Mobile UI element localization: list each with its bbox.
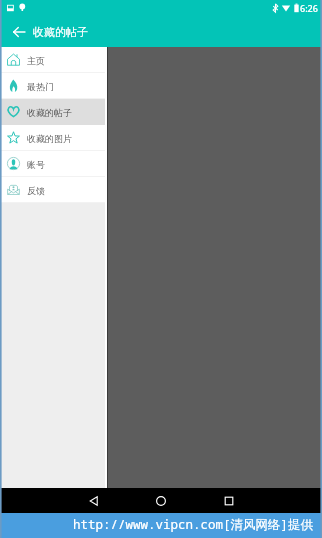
staticText: 最热门	[27, 81, 54, 92]
button[interactable]: 收藏的图片	[0, 125, 105, 150]
staticText: 6:26	[300, 2, 318, 14]
button[interactable]: Back	[81, 488, 106, 513]
button[interactable]: 最热门	[0, 73, 105, 98]
staticText: 反馈	[27, 185, 45, 196]
button[interactable]: 账号	[0, 151, 105, 176]
button[interactable]: 主页	[0, 47, 105, 72]
staticText: 收藏的帖子	[33, 25, 88, 39]
button[interactable]: Home	[148, 488, 173, 513]
button[interactable]: Recents	[216, 488, 241, 513]
staticText: 收藏的图片	[27, 133, 72, 144]
button[interactable]: 收藏的帖子	[0, 99, 105, 124]
staticText: 主页	[27, 55, 45, 66]
staticText: http://www.vipcn.com[清风网络]提供	[73, 516, 314, 533]
staticText: 账号	[27, 159, 45, 170]
button[interactable]: Back	[4, 17, 34, 47]
button[interactable]: 反馈	[0, 177, 105, 202]
staticText: 收藏的帖子	[27, 107, 72, 118]
